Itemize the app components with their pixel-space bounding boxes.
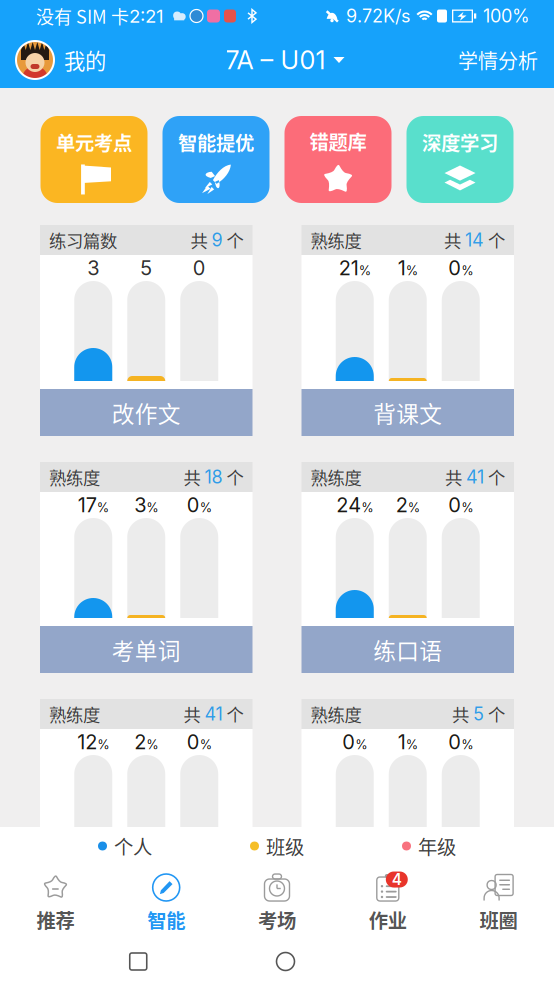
staticText: 熟练度 <box>310 227 361 253</box>
staticText: 熟练度 <box>310 464 361 490</box>
staticText: 7A – U01 <box>225 45 325 75</box>
button[interactable]: 背课文 <box>301 389 514 436</box>
staticText: 考场 <box>258 905 296 933</box>
button[interactable]: Home <box>276 952 294 970</box>
staticText: 我的 <box>64 45 106 75</box>
staticText: 3% <box>134 493 158 517</box>
staticText: 深度学习 <box>422 128 498 156</box>
staticText: 个 <box>484 227 505 253</box>
staticText: 21% <box>339 256 371 280</box>
button[interactable]: 深度学习 <box>406 116 513 203</box>
staticText: 个 <box>222 701 243 727</box>
button[interactable]: 班圈 <box>443 865 554 940</box>
staticText: 背课文 <box>373 396 442 429</box>
staticText: 1% <box>398 730 418 754</box>
button[interactable]: 学情分析 <box>458 45 538 74</box>
staticText: 共 <box>452 701 473 727</box>
staticText: 0% <box>448 493 473 517</box>
staticText: 考单词 <box>112 633 181 666</box>
staticText: 41 <box>466 466 484 488</box>
staticText: 个 <box>484 464 505 490</box>
button[interactable]: 7A – U01 <box>225 45 344 75</box>
staticText: 错题库 <box>309 127 366 155</box>
staticText: 3 <box>87 256 99 280</box>
staticText: 班级 <box>266 832 304 860</box>
staticText: 个 <box>222 464 243 490</box>
button[interactable]: 智能提优 <box>162 116 269 203</box>
staticText: 没有 SIM 卡 <box>36 3 129 29</box>
staticText: 单元考点 <box>56 128 132 156</box>
staticText: 个 <box>484 701 505 727</box>
staticText: 班圈 <box>480 905 518 933</box>
button[interactable]: 4 <box>332 865 443 940</box>
button[interactable]: 考场 <box>222 865 332 940</box>
staticText: 学情分析 <box>458 45 538 74</box>
staticText: 个人 <box>114 832 152 860</box>
staticText: 智能 <box>147 905 185 933</box>
staticText: 共 <box>183 464 204 490</box>
button[interactable]: 练口语 <box>301 626 514 673</box>
staticText: 5 <box>140 256 152 280</box>
staticText: 18 <box>204 466 222 488</box>
staticText: 14 <box>465 229 484 251</box>
button[interactable]: 推荐 <box>0 865 111 940</box>
staticText: 0% <box>187 730 212 754</box>
staticText: 2% <box>134 730 158 754</box>
staticText: 共 <box>445 464 466 490</box>
button[interactable]: Recents <box>130 953 147 970</box>
staticText: 9.72K/s <box>346 5 411 27</box>
staticText: 2% <box>396 493 420 517</box>
staticText: 24% <box>336 493 373 517</box>
staticText: 共 <box>183 701 204 727</box>
staticText: 作业 <box>369 905 407 933</box>
staticText: 熟练度 <box>49 464 100 490</box>
staticText: 12% <box>77 730 109 754</box>
button[interactable]: 考单词 <box>40 626 252 673</box>
staticText: 0% <box>342 730 367 754</box>
staticText: 练习篇数 <box>49 227 117 253</box>
button[interactable]: 我的 <box>16 41 112 79</box>
button[interactable]: 改作文 <box>40 389 252 436</box>
staticText: 9 <box>211 229 222 251</box>
staticText: 熟练度 <box>49 701 100 727</box>
staticText: 共 <box>190 227 211 253</box>
staticText: 智能提优 <box>178 128 254 156</box>
button[interactable]: 智能 <box>111 865 222 940</box>
staticText: 0 <box>193 256 206 280</box>
button[interactable]: 错题库 <box>284 116 391 203</box>
staticText: 0% <box>448 256 473 280</box>
staticText: 改作文 <box>112 396 181 429</box>
staticText: 5 <box>473 703 484 725</box>
staticText: 年级 <box>418 832 456 860</box>
staticText: 0% <box>187 493 212 517</box>
staticText: 1% <box>398 256 418 280</box>
staticText: 100% <box>483 5 530 27</box>
staticText: 4 <box>392 870 402 889</box>
staticText: 41 <box>204 703 222 725</box>
staticText: 0% <box>448 730 473 754</box>
staticText: 熟练度 <box>310 701 361 727</box>
button[interactable]: 单元考点 <box>40 116 147 203</box>
staticText: 个 <box>222 227 243 253</box>
staticText: 练口语 <box>373 633 442 666</box>
staticText: 2:21 <box>129 5 164 27</box>
staticText: 推荐 <box>36 905 74 933</box>
staticText: 17% <box>78 493 109 517</box>
staticText: 共 <box>444 227 465 253</box>
